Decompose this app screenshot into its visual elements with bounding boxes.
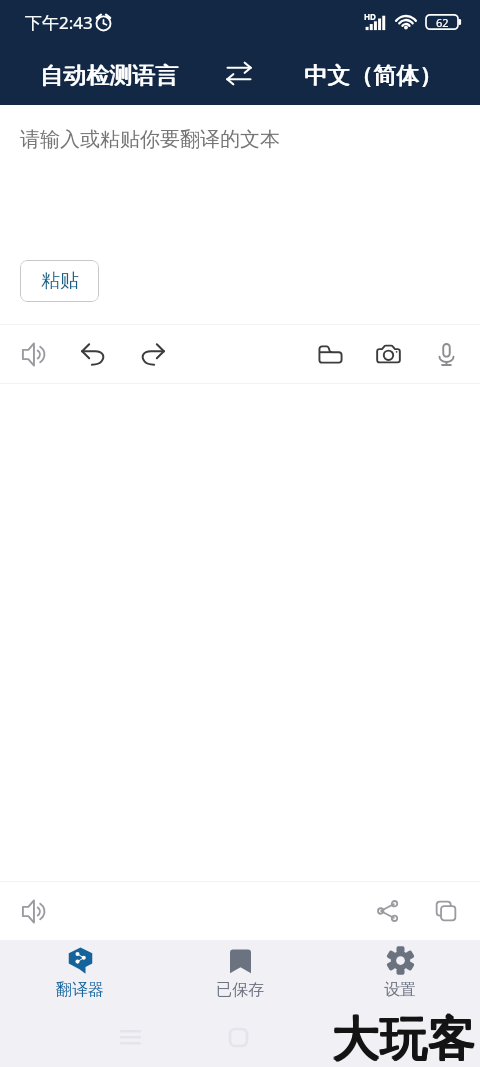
staticText: 大玩客 [332,1010,476,1067]
staticText: 粘贴 [41,269,79,293]
staticText: 大玩客 [332,1009,476,1067]
button[interactable]: Voice input [424,332,468,376]
button[interactable]: 自动检测语言 [28,55,190,96]
button[interactable]: Redo [130,332,174,376]
staticText: 自动检测语言 [41,61,179,90]
button[interactable]: Swap languages [217,51,261,95]
staticText: 62 [436,15,449,30]
staticText: 中文（简体） [305,61,443,90]
staticText: 大玩客 [333,1008,477,1067]
staticText: 下午2:43 [25,11,93,34]
staticText: 请输入或粘贴你要翻译的文本 [20,127,280,152]
button[interactable]: Documents [308,332,352,376]
staticText: 中文（简体） [304,61,442,90]
button[interactable]: 已保存 [160,941,320,1006]
staticText: HD [364,11,376,22]
staticText: 大玩客 [333,1010,477,1067]
staticText: 大玩客 [333,1009,477,1067]
button[interactable]: Camera [366,332,410,376]
button[interactable]: 中文（简体） [292,55,454,96]
button[interactable]: 翻译器 [0,941,160,1006]
staticText: 翻译器 [56,980,104,1000]
staticText: 大玩客 [331,1009,475,1067]
staticText: 设置 [384,980,416,1000]
staticText: 自动检测语言 [40,61,178,90]
button[interactable]: Share [366,889,410,933]
staticText: 大玩客 [332,1008,476,1067]
button[interactable]: Listen to translation [12,889,56,933]
button[interactable]: 设置 [320,941,480,1006]
button[interactable]: Undo [71,332,115,376]
staticText: 大玩客 [331,1008,475,1067]
staticText: 大玩客 [331,1010,475,1067]
button[interactable]: Listen [12,332,56,376]
button[interactable]: Recents [108,1015,152,1059]
staticText: 已保存 [216,980,264,1000]
button[interactable]: Copy [424,889,468,933]
button[interactable]: 粘贴 [20,260,99,302]
